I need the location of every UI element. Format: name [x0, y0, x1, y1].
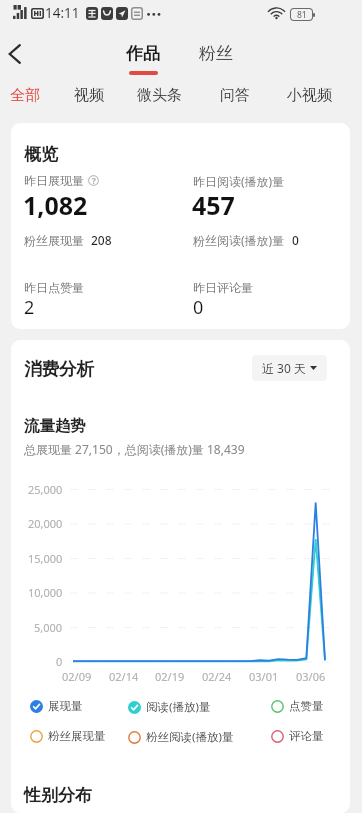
- staticText: 近 30 天: [262, 360, 306, 376]
- staticText: 02/19: [155, 669, 185, 684]
- staticText: 02/24: [202, 669, 232, 684]
- staticText: 粉丝: [199, 43, 233, 64]
- button[interactable]: 小视频: [287, 86, 332, 105]
- staticText: 208: [91, 232, 112, 248]
- staticText: 25,000: [28, 482, 63, 497]
- staticText: 评论量: [289, 729, 324, 743]
- staticText: 昨日评论量: [193, 280, 253, 295]
- staticText: 消费分析: [24, 358, 94, 380]
- staticText: 03/01: [249, 669, 279, 684]
- button[interactable]: 粉丝阅读(播放)量: [128, 729, 234, 745]
- staticText: 5,000: [34, 620, 63, 635]
- staticText: 粉丝展现量: [48, 729, 106, 743]
- staticText: 15,000: [28, 551, 63, 566]
- button[interactable]: 粉丝展现量: [30, 729, 106, 743]
- staticText: 阅读(播放)量: [146, 699, 211, 715]
- staticText: 03/06: [296, 669, 326, 684]
- staticText: 性别分布: [24, 785, 92, 806]
- button[interactable]: 展现量: [30, 699, 83, 713]
- button[interactable]: 微头条: [137, 86, 182, 105]
- staticText: 作品: [126, 43, 160, 64]
- button[interactable]: Back: [0, 32, 37, 76]
- staticText: 概览: [24, 144, 58, 165]
- staticText: ?: [92, 175, 96, 186]
- staticText: 457: [192, 188, 235, 222]
- button[interactable]: 问答: [220, 86, 250, 105]
- staticText: 0: [193, 295, 204, 320]
- button[interactable]: 近 30 天: [252, 355, 327, 381]
- staticText: 粉丝阅读(播放)量: [146, 729, 234, 745]
- staticText: 14:11: [45, 4, 80, 22]
- button[interactable]: 阅读(播放)量: [128, 699, 211, 715]
- staticText: 小视频: [287, 86, 332, 105]
- staticText: 1,082: [23, 188, 88, 222]
- staticText: 昨日展现量: [24, 173, 84, 188]
- staticText: 0: [292, 232, 299, 248]
- staticText: 点赞量: [289, 699, 324, 713]
- button[interactable]: 评论量: [271, 729, 324, 743]
- button[interactable]: 视频: [74, 86, 104, 105]
- staticText: 视频: [74, 86, 104, 105]
- staticText: 0: [56, 654, 63, 669]
- button[interactable]: 全部: [10, 86, 40, 105]
- staticText: 昨日阅读(播放)量: [193, 173, 285, 189]
- staticText: 昨日点赞量: [24, 280, 84, 295]
- staticText: 2: [24, 295, 35, 320]
- staticText: 展现量: [48, 699, 83, 713]
- staticText: 02/09: [62, 669, 92, 684]
- staticText: 全部: [10, 86, 40, 105]
- button[interactable]: 作品: [126, 43, 160, 75]
- staticText: 总展现量 27,150，总阅读(播放)量 18,439: [24, 441, 245, 457]
- staticText: 粉丝展现量: [24, 233, 84, 248]
- staticText: 流量趋势: [24, 416, 86, 436]
- button[interactable]: 点赞量: [271, 699, 324, 713]
- button[interactable]: 粉丝: [199, 43, 233, 64]
- staticText: 81: [297, 9, 307, 20]
- staticText: 微头条: [137, 86, 182, 105]
- staticText: 10,000: [28, 585, 63, 600]
- staticText: 02/14: [109, 669, 139, 684]
- staticText: 问答: [220, 86, 250, 105]
- staticText: 20,000: [28, 516, 63, 531]
- staticText: 粉丝阅读(播放)量: [193, 232, 285, 248]
